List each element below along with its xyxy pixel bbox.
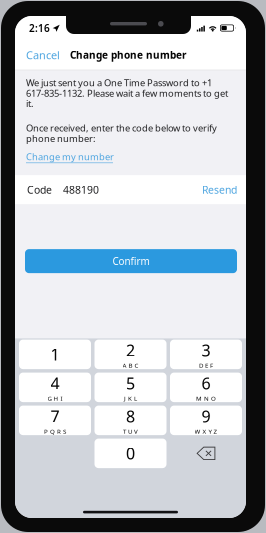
staticText: Change phone number bbox=[70, 48, 186, 62]
staticText: 7 bbox=[50, 405, 59, 427]
staticText: 1 bbox=[50, 343, 59, 365]
button[interactable]: Confirm bbox=[25, 249, 237, 273]
staticText: T U V bbox=[123, 427, 138, 435]
staticText: M N O bbox=[196, 394, 216, 402]
staticText: Code bbox=[27, 183, 52, 197]
button[interactable]: Delete bbox=[170, 439, 242, 468]
staticText: 2 bbox=[126, 339, 135, 361]
button[interactable]: 5 bbox=[94, 373, 166, 402]
staticText: J K L bbox=[124, 394, 137, 402]
staticText: 9 bbox=[201, 405, 210, 427]
staticText: 5 bbox=[126, 372, 135, 394]
button[interactable]: 3 bbox=[170, 340, 242, 369]
button[interactable]: 6 bbox=[170, 373, 242, 402]
staticText: 488190 bbox=[63, 183, 99, 197]
button[interactable]: 7 bbox=[19, 406, 91, 435]
button[interactable]: 8 bbox=[94, 406, 166, 435]
staticText: 2:16 bbox=[29, 21, 50, 35]
button[interactable]: 1 bbox=[19, 340, 91, 369]
button[interactable]: Resend bbox=[202, 183, 237, 197]
staticText: A B C bbox=[122, 361, 138, 369]
button[interactable]: Change my number bbox=[15, 143, 114, 163]
staticText: P Q R S bbox=[44, 427, 66, 435]
staticText: G H I bbox=[47, 394, 62, 402]
button[interactable]: Cancel bbox=[15, 40, 70, 70]
button[interactable]: 0 bbox=[94, 439, 166, 468]
button[interactable]: 4 bbox=[19, 373, 91, 402]
staticText: Cancel bbox=[26, 47, 60, 62]
button[interactable]: 2 bbox=[94, 340, 166, 369]
staticText: D E F bbox=[199, 361, 213, 369]
staticText: Change my number bbox=[26, 151, 114, 162]
staticText: We just sent you a One Time Password to … bbox=[26, 77, 228, 109]
staticText: 4 bbox=[50, 372, 59, 394]
staticText: Resend bbox=[202, 183, 237, 197]
staticText: 8 bbox=[126, 405, 135, 427]
staticText: 6 bbox=[201, 372, 210, 394]
button[interactable]: 9 bbox=[170, 406, 242, 435]
staticText: 0 bbox=[126, 442, 135, 464]
staticText: 3 bbox=[201, 339, 210, 361]
staticText: Once received, enter the code below to v… bbox=[26, 123, 217, 143]
staticText: W X Y Z bbox=[194, 427, 217, 435]
staticText: Confirm bbox=[112, 254, 149, 268]
